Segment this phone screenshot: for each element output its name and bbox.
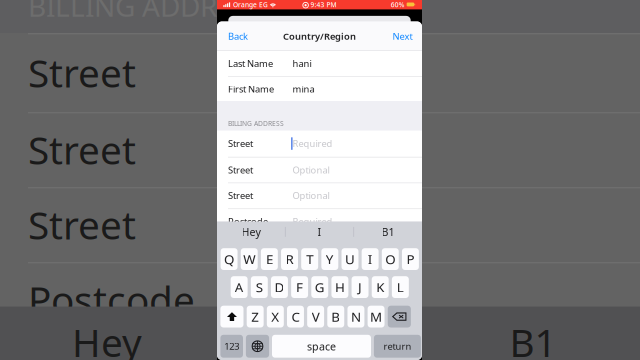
button[interactable]: N	[347, 306, 364, 327]
staticText: U	[345, 250, 355, 268]
staticText: Street	[228, 164, 253, 176]
button[interactable]: L	[392, 276, 409, 298]
staticText: Y	[326, 250, 334, 268]
staticText: 9:43 PM	[310, 0, 336, 9]
staticText: Street	[228, 137, 253, 150]
button[interactable]: C	[287, 306, 304, 327]
staticText: Street	[228, 189, 253, 202]
button[interactable]: Shift	[220, 306, 243, 327]
staticText: BILLING ADDRESS	[228, 119, 284, 128]
staticText: Street	[28, 199, 136, 250]
staticText: Postcode	[228, 215, 268, 228]
button[interactable]: Q	[221, 248, 237, 270]
button[interactable]: Hey	[217, 221, 285, 242]
staticText: Hey	[241, 225, 260, 239]
button[interactable]: A	[231, 276, 248, 298]
staticText: Orange EG	[233, 0, 268, 9]
button[interactable]: Postcode	[217, 208, 422, 234]
button[interactable]: Switch keyboard	[246, 335, 269, 358]
staticText: B1	[381, 225, 394, 239]
button[interactable]: V	[307, 306, 324, 327]
button[interactable]: I	[286, 221, 353, 242]
staticText: B	[331, 308, 340, 325]
staticText: Required	[292, 137, 332, 150]
staticText: 60%	[391, 0, 405, 9]
staticText: Next	[392, 30, 412, 42]
button[interactable]: H	[331, 276, 348, 298]
staticText: E	[266, 250, 273, 268]
button[interactable]: X	[267, 306, 284, 327]
staticText: S	[256, 278, 263, 296]
button[interactable]: S	[251, 276, 268, 298]
button[interactable]: space	[272, 335, 371, 358]
staticText: Z	[251, 308, 259, 325]
staticText: F	[296, 278, 303, 296]
staticText: H	[335, 278, 345, 296]
staticText: Street	[28, 124, 136, 175]
staticText: return	[383, 340, 411, 352]
staticText: Street	[28, 47, 136, 98]
button[interactable]: Street	[217, 157, 422, 183]
button[interactable]: M	[368, 306, 384, 327]
button[interactable]: E	[261, 248, 278, 270]
staticText: Postcode	[28, 274, 195, 325]
staticText: First Name	[228, 83, 274, 95]
button[interactable]: Street	[217, 130, 422, 156]
staticText: C	[291, 308, 299, 325]
staticText: O	[385, 250, 395, 268]
button[interactable]: O	[382, 248, 399, 270]
staticText: G	[315, 278, 325, 296]
staticText: M	[370, 308, 382, 325]
button[interactable]: G	[311, 276, 328, 298]
button[interactable]: return	[374, 335, 421, 358]
staticText: space	[307, 339, 336, 353]
button[interactable]: D	[271, 276, 288, 298]
staticText: X	[271, 308, 279, 325]
button[interactable]: Delete	[388, 306, 411, 327]
staticText: Optional	[292, 189, 329, 202]
staticText: L	[397, 278, 404, 296]
button[interactable]: Back	[217, 21, 263, 51]
button[interactable]: Y	[321, 248, 338, 270]
staticText: N	[351, 308, 361, 325]
button[interactable]: Street	[217, 182, 422, 208]
button[interactable]: W	[241, 248, 258, 270]
staticText: W	[243, 250, 255, 268]
button[interactable]: R	[281, 248, 298, 270]
staticText: mina	[292, 83, 314, 95]
button[interactable]: K	[372, 276, 389, 298]
staticText: D	[274, 278, 284, 296]
button[interactable]: First Name	[217, 76, 422, 102]
button[interactable]: T	[301, 248, 318, 270]
staticText: J	[358, 278, 362, 296]
button[interactable]: B	[327, 306, 344, 327]
button[interactable]: P	[402, 248, 419, 270]
button[interactable]: J	[352, 276, 368, 298]
staticText: Back	[228, 30, 248, 42]
staticText: I	[317, 225, 321, 239]
button[interactable]: B1	[354, 221, 422, 242]
staticText: I	[368, 250, 373, 268]
button[interactable]: Last Name	[217, 50, 422, 76]
staticText: Q	[224, 250, 234, 268]
button[interactable]: U	[341, 248, 358, 270]
staticText: B1	[509, 316, 556, 360]
button[interactable]: 123	[220, 335, 243, 358]
staticText: P	[406, 250, 414, 268]
staticText: 123	[224, 340, 239, 352]
staticText: Optional	[292, 164, 329, 176]
staticText: V	[312, 308, 320, 325]
staticText: Last Name	[228, 57, 273, 70]
staticText: hani	[292, 57, 311, 70]
staticText: R	[285, 250, 293, 268]
staticText: T	[306, 250, 313, 268]
button[interactable]: Z	[247, 306, 264, 327]
staticText: Required	[292, 215, 332, 228]
staticText: I	[313, 316, 326, 360]
staticText: A	[235, 278, 244, 296]
button[interactable]: I	[362, 248, 378, 270]
staticText: Hey	[72, 316, 142, 360]
button[interactable]: Next	[217, 21, 263, 51]
button[interactable]: F	[291, 276, 308, 298]
staticText: K	[376, 278, 384, 296]
